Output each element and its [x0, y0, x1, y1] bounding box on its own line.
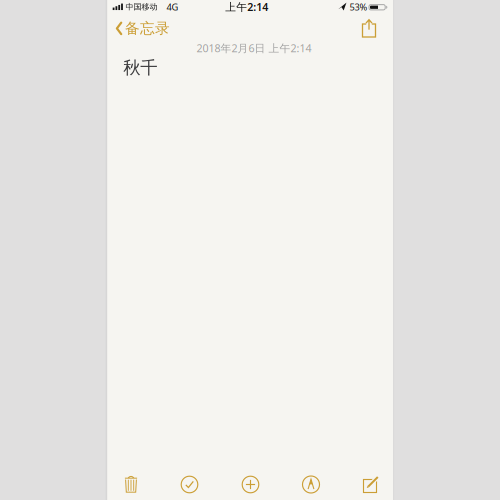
- staticText: 中国移动: [125, 2, 157, 12]
- staticText: 2018年2月6日 上午2:14: [196, 41, 311, 55]
- staticText: 上午2:14: [225, 0, 268, 14]
- button[interactable]: Share: [359, 18, 379, 38]
- button[interactable]: 备忘录: [116, 19, 170, 37]
- staticText: 4G: [166, 1, 178, 13]
- button[interactable]: Checklist: [179, 474, 199, 494]
- button[interactable]: Markup: [300, 474, 321, 495]
- staticText: 备忘录: [125, 19, 170, 37]
- staticText: 53%: [349, 1, 367, 13]
- button[interactable]: New note: [359, 474, 381, 496]
- staticText: 秋千: [123, 57, 157, 78]
- button[interactable]: Add attachment: [240, 474, 260, 494]
- button[interactable]: Delete: [123, 474, 139, 494]
